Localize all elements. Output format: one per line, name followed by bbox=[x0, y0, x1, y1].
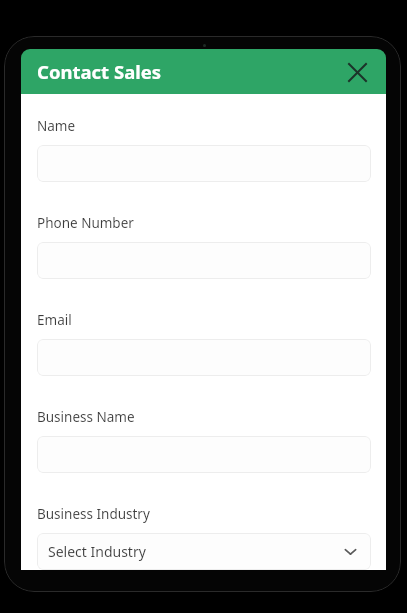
staticText: Business Industry bbox=[37, 505, 150, 523]
staticText: Business Name bbox=[37, 408, 135, 426]
staticText: Name bbox=[37, 117, 76, 135]
staticText: Email bbox=[37, 311, 72, 329]
staticText: Select Industry bbox=[48, 542, 146, 561]
staticText: Phone Number bbox=[37, 214, 134, 232]
button[interactable] bbox=[37, 145, 371, 182]
button[interactable] bbox=[37, 242, 371, 279]
staticText: Contact Sales bbox=[37, 59, 162, 84]
button[interactable] bbox=[37, 339, 371, 376]
button[interactable]: Select Industry bbox=[37, 533, 371, 570]
button[interactable] bbox=[37, 436, 371, 473]
button[interactable]: Close bbox=[342, 57, 372, 87]
